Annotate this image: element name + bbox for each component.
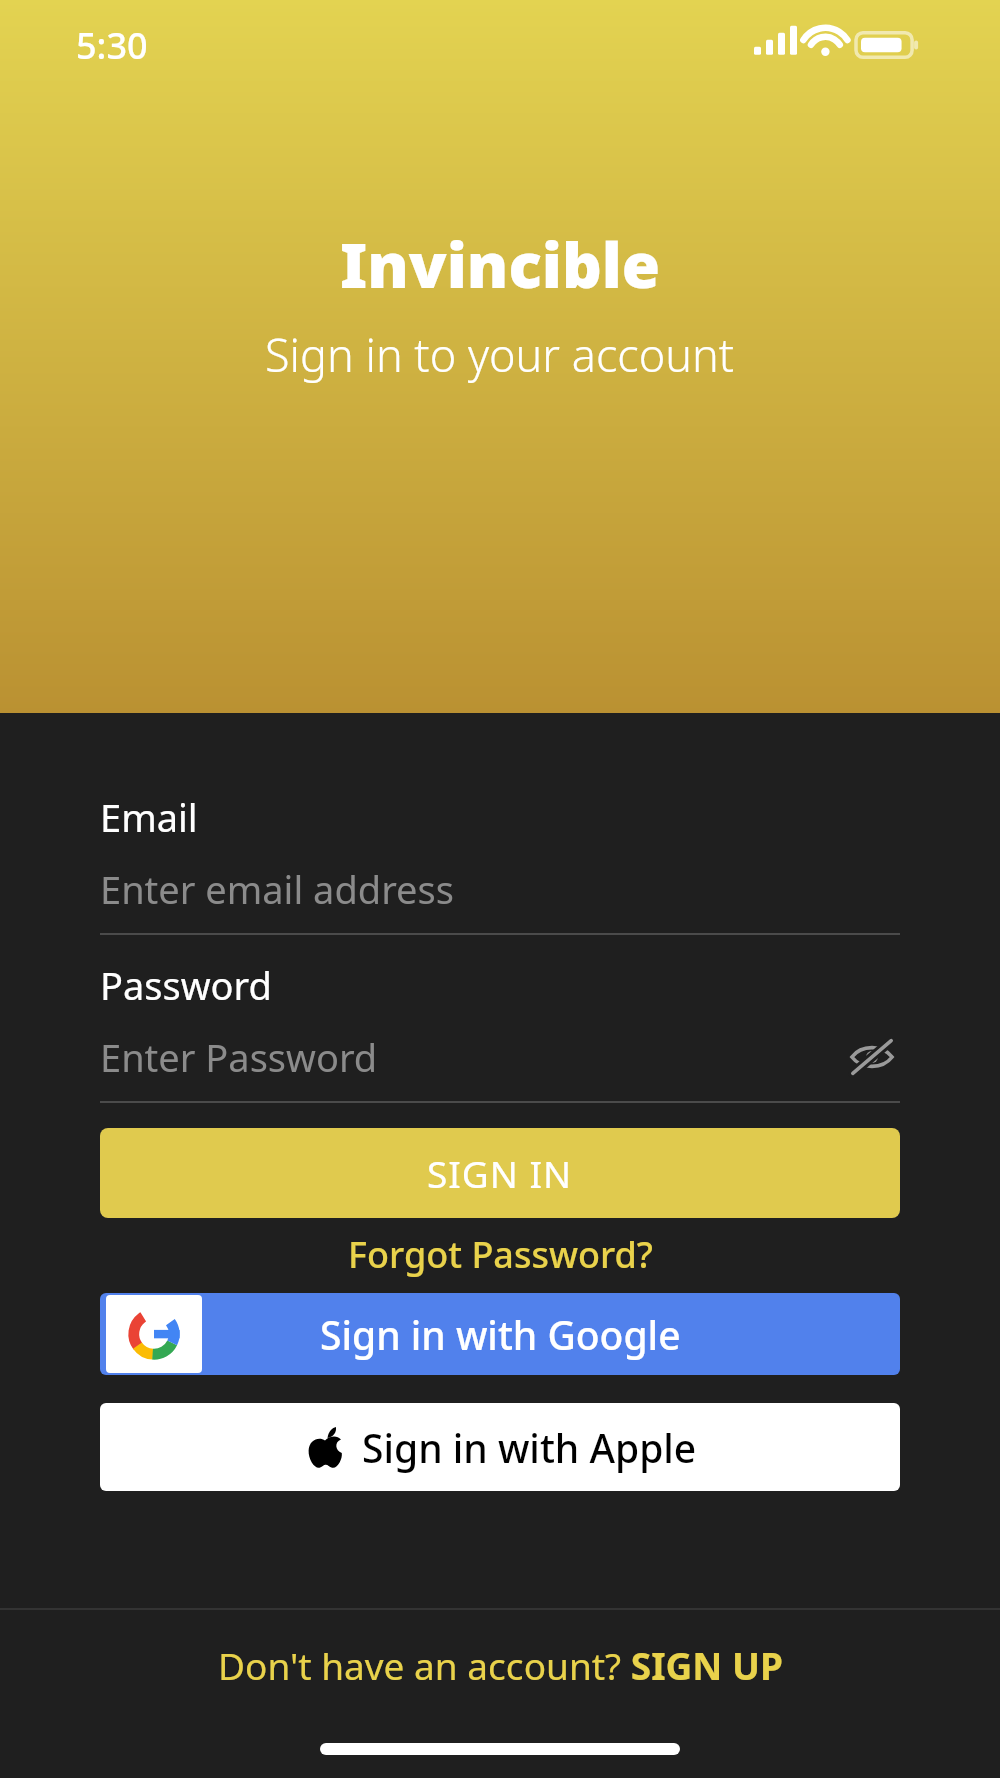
staticText: 5:30 xyxy=(76,21,148,70)
staticText: Sign in to your account xyxy=(265,324,735,385)
staticText: Invincible xyxy=(340,222,661,306)
button[interactable]: Show password xyxy=(844,1031,900,1083)
staticText: SIGN IN xyxy=(427,1148,573,1198)
staticText: Don't have an account? SIGN UP xyxy=(218,1640,783,1690)
staticText: Email xyxy=(100,791,198,843)
button[interactable]: Sign in with Apple xyxy=(100,1403,900,1491)
staticText: Enter email address xyxy=(100,863,454,911)
button[interactable]: Sign in with Google xyxy=(100,1293,900,1375)
button[interactable]: Don't have an account? SIGN UP xyxy=(0,1610,1000,1720)
staticText: Sign in with Apple xyxy=(362,1421,697,1474)
button[interactable]: Forgot Password? xyxy=(100,1230,900,1279)
staticText: Enter Password xyxy=(100,1031,378,1083)
button[interactable]: Enter Password xyxy=(100,1031,844,1083)
staticText: Sign in with Google xyxy=(320,1308,681,1361)
button[interactable]: SIGN IN xyxy=(100,1128,900,1218)
staticText: Forgot Password? xyxy=(348,1230,653,1279)
button[interactable]: Enter email address xyxy=(100,863,900,911)
staticText: Password xyxy=(100,959,272,1011)
